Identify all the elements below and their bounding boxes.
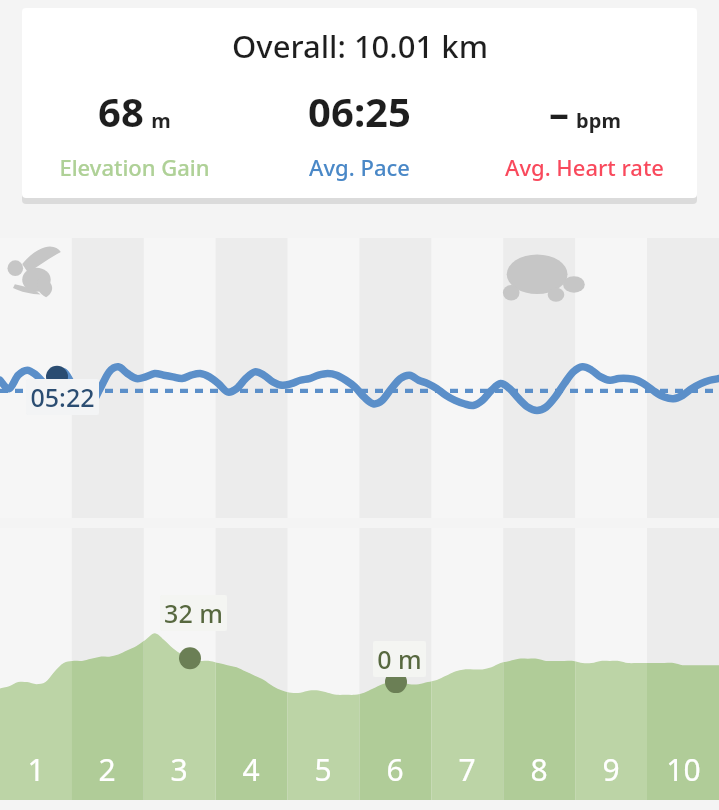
staticText: 6 xyxy=(386,749,404,790)
staticText: 5 xyxy=(314,749,332,790)
staticText: 1 xyxy=(27,749,45,790)
staticText: Avg. Heart rate xyxy=(505,152,664,182)
staticText: 05:22 xyxy=(30,380,95,414)
staticText: m xyxy=(151,107,171,134)
button[interactable]: 05:22 xyxy=(0,238,719,518)
staticText: Avg. Pace xyxy=(309,152,410,182)
button[interactable]: – xyxy=(472,84,697,182)
button[interactable]: 32 m xyxy=(0,528,719,800)
staticText: Elevation Gain xyxy=(59,152,210,182)
staticText: 2 xyxy=(98,749,116,790)
staticText: 9 xyxy=(602,749,620,790)
button[interactable]: Overall: 10.01 km xyxy=(22,8,697,198)
staticText: – xyxy=(549,84,569,138)
staticText: 68 xyxy=(98,84,144,138)
staticText: 4 xyxy=(242,749,260,790)
button[interactable]: 68 xyxy=(22,84,247,182)
staticText: Overall: 10.01 km xyxy=(232,25,488,67)
staticText: 0 m xyxy=(377,642,422,676)
staticText: 06:25 xyxy=(308,84,411,138)
staticText: 3 xyxy=(170,749,188,790)
staticText: 32 m xyxy=(164,596,223,630)
staticText: 7 xyxy=(458,749,476,790)
button[interactable]: 06:25 xyxy=(247,84,472,182)
staticText: 8 xyxy=(530,749,548,790)
staticText: bpm xyxy=(576,107,621,134)
staticText: 10 xyxy=(666,749,701,790)
